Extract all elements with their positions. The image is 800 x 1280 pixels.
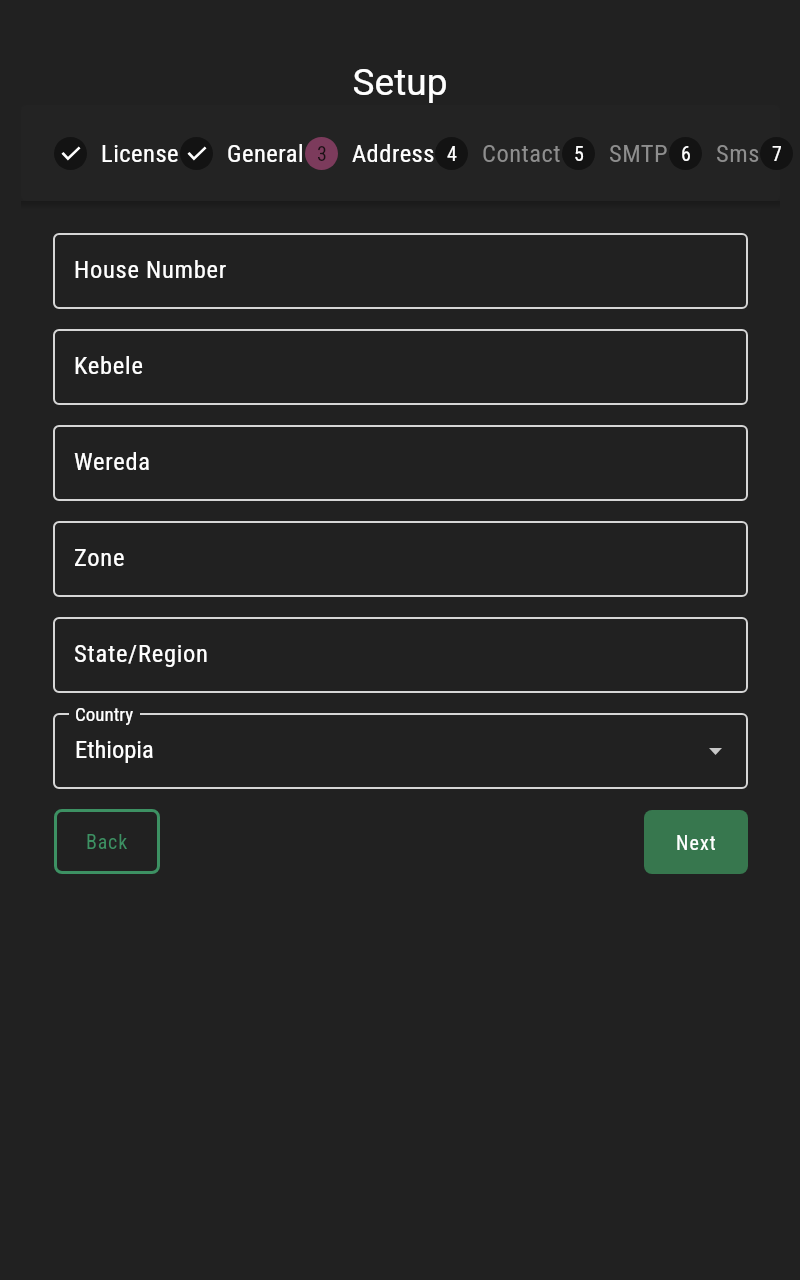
staticText: Address [352, 139, 435, 168]
staticText: Ethiopia [75, 735, 154, 764]
staticText: State/Region [74, 639, 209, 668]
button[interactable]: 4 [435, 137, 562, 170]
button[interactable]: 3 [305, 137, 435, 170]
button[interactable]: Ethiopia [53, 713, 748, 789]
staticText: 7 [772, 142, 782, 165]
button[interactable]: Kebele [53, 329, 748, 405]
staticText: Wereda [74, 447, 151, 476]
button[interactable]: License [54, 137, 180, 170]
button[interactable]: General [180, 137, 305, 170]
other: Open country dropdown [709, 748, 722, 755]
staticText: License [101, 139, 180, 168]
staticText: SMTP [609, 139, 669, 168]
button[interactable]: 6 [669, 137, 760, 170]
button[interactable]: Next [644, 810, 748, 874]
staticText: 5 [574, 142, 584, 165]
button[interactable]: Zone [53, 521, 748, 597]
staticText: Sms [716, 139, 760, 168]
staticText: Zone [74, 543, 126, 572]
staticText: Setup [0, 61, 800, 104]
staticText: House Number [74, 255, 227, 284]
staticText: 3 [317, 142, 327, 165]
staticText: 4 [447, 142, 457, 165]
button[interactable]: State/Region [53, 617, 748, 693]
button[interactable]: House Number [53, 233, 748, 309]
button[interactable]: Back [54, 809, 160, 874]
staticText: Country [75, 703, 134, 725]
button[interactable]: Wereda [53, 425, 748, 501]
staticText: Kebele [74, 351, 144, 380]
staticText: 6 [681, 142, 691, 165]
button[interactable]: 5 [562, 137, 669, 170]
staticText: General [227, 139, 305, 168]
staticText: Back [86, 830, 128, 853]
staticText: Next [676, 831, 717, 854]
staticText: Contact [482, 139, 562, 168]
